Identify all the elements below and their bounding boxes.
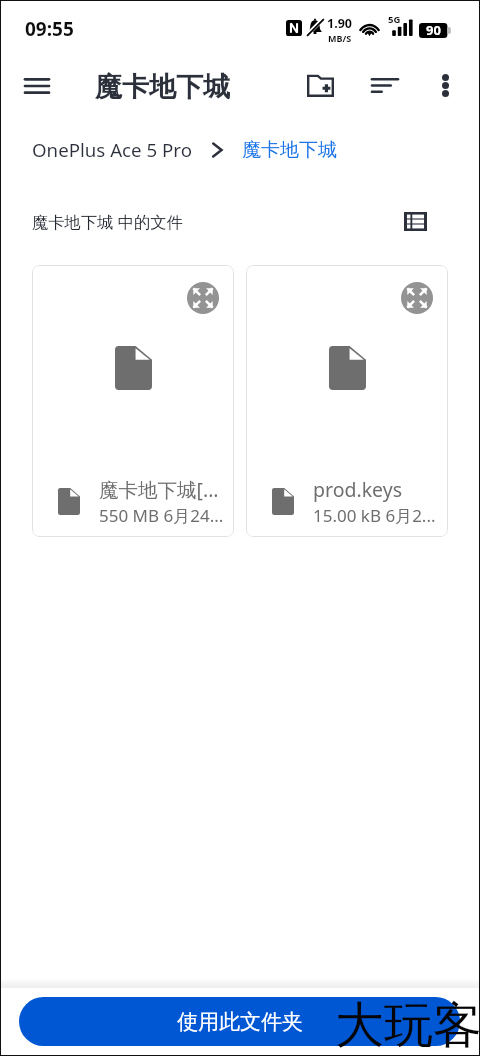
button[interactable]: Expand preview [401, 282, 433, 314]
staticText: prod.keys [313, 476, 402, 503]
staticText: 1.90 [327, 15, 352, 32]
button[interactable]: Expand preview [187, 282, 219, 314]
staticText: 魔卡地下城 [95, 70, 230, 104]
button[interactable]: Sort [361, 61, 409, 109]
staticText: 魔卡地下城 中的文件 [32, 211, 183, 233]
button[interactable]: Switch to list view [395, 201, 435, 241]
button[interactable]: Expand preview [246, 265, 448, 537]
button[interactable]: 魔卡地下城 [242, 138, 337, 162]
staticText: 15.00 kB 6月2... [313, 504, 436, 527]
staticText: 90 [426, 21, 441, 39]
staticText: 大玩客 [335, 995, 480, 1056]
staticText: 09:55 [25, 16, 74, 42]
staticText: 魔卡地下城[... [99, 476, 219, 503]
staticText: 5G [388, 13, 401, 26]
staticText: 使用此文件夹 [177, 1009, 303, 1035]
button[interactable]: Create new folder [296, 61, 344, 109]
button[interactable]: 使用此文件夹 [19, 997, 460, 1046]
button[interactable]: Expand preview [32, 265, 234, 537]
button[interactable]: Navigation menu [13, 62, 61, 110]
button[interactable]: OnePlus Ace 5 Pro [32, 137, 192, 162]
staticText: MB/S [328, 32, 352, 44]
staticText: 550 MB 6月24... [99, 504, 224, 527]
button[interactable]: More options [423, 63, 467, 107]
